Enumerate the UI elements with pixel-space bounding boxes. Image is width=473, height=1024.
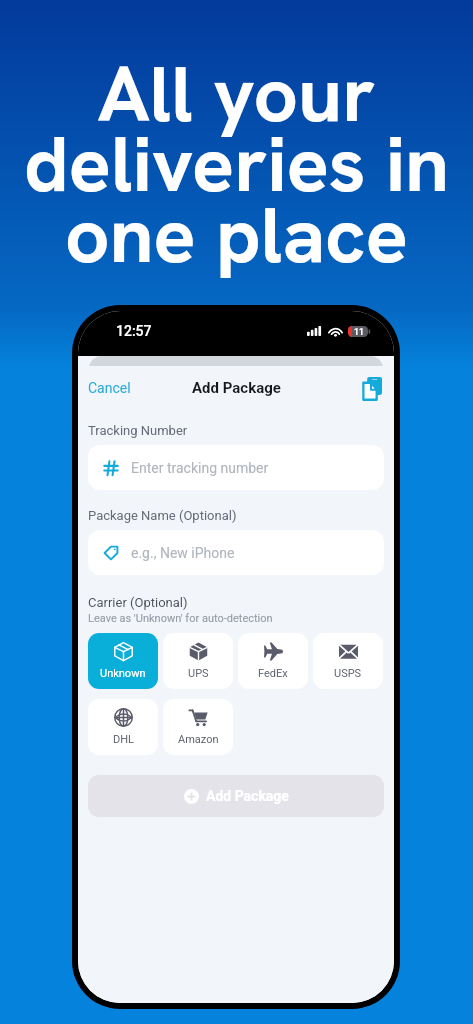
button[interactable]: Cancel: [78, 373, 141, 403]
button[interactable]: Amazon: [163, 699, 233, 755]
button[interactable]: Add Package: [88, 775, 384, 817]
button[interactable]: FedEx: [238, 633, 308, 689]
staticText: Tracking Number: [88, 423, 188, 438]
staticText: Add Package: [206, 788, 289, 804]
staticText: DHL: [113, 733, 134, 746]
staticText: Cancel: [88, 380, 131, 396]
staticText: 11: [354, 327, 364, 337]
button[interactable]: UPS: [163, 633, 233, 689]
staticText: Add Package: [192, 379, 281, 397]
button[interactable]: Paste from clipboard: [355, 371, 394, 405]
staticText: USPS: [334, 667, 362, 680]
staticText: Leave as 'Unknown' for auto-detection: [88, 612, 273, 625]
staticText: All your deliveries in one place: [0, 43, 473, 286]
staticText: 12:57: [116, 323, 152, 339]
staticText: Unknown: [100, 667, 146, 680]
button[interactable]: Enter tracking number: [88, 445, 384, 490]
staticText: e.g., New iPhone: [131, 545, 235, 561]
staticText: Amazon: [178, 733, 219, 746]
staticText: FedEx: [258, 667, 288, 680]
button[interactable]: e.g., New iPhone: [88, 530, 384, 575]
staticText: Enter tracking number: [131, 460, 269, 476]
button[interactable]: DHL: [88, 699, 158, 755]
button[interactable]: Unknown: [88, 633, 158, 689]
button[interactable]: USPS: [313, 633, 383, 689]
staticText: UPS: [188, 667, 209, 680]
staticText: Carrier (Optional): [88, 595, 188, 610]
staticText: Package Name (Optional): [88, 508, 237, 523]
